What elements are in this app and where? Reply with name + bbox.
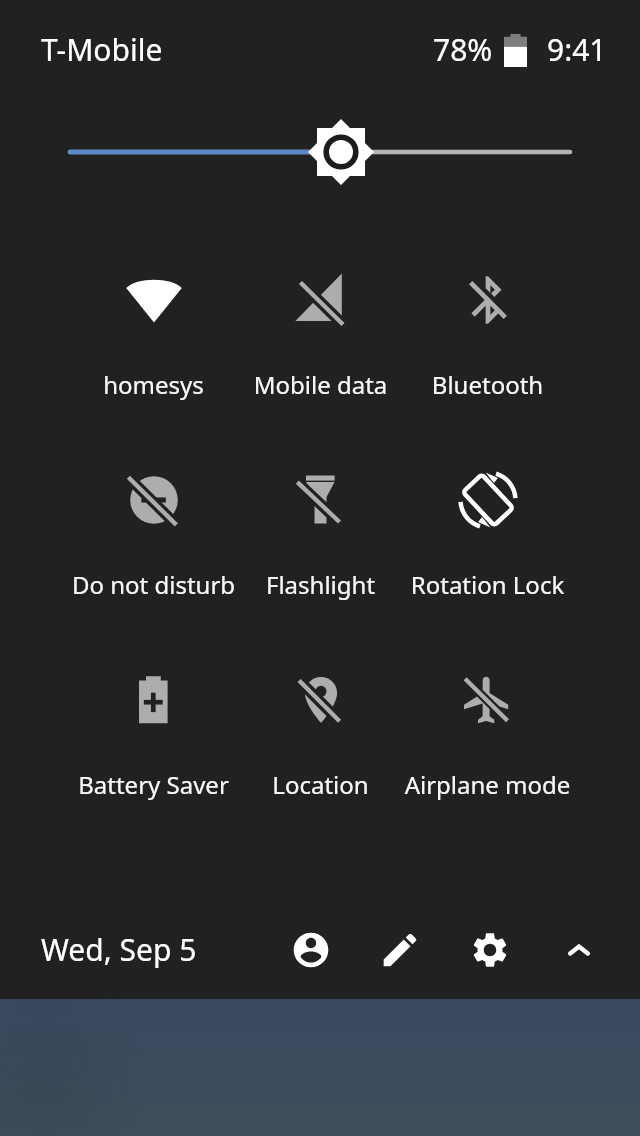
button[interactable]: Flashlight [237, 438, 404, 582]
button[interactable]: Edit [372, 922, 428, 978]
staticText: homesys [70, 368, 237, 401]
button[interactable]: Bluetooth [404, 238, 571, 382]
staticText: Do not disturb [70, 568, 237, 601]
button[interactable]: Mobile data [237, 238, 404, 382]
button[interactable]: homesys [70, 238, 237, 382]
button[interactable]: Rotation Lock [404, 438, 571, 582]
button[interactable]: Battery Saver [70, 638, 237, 782]
staticText: Battery Saver [70, 768, 237, 801]
staticText: Wed, Sep 5 [41, 929, 197, 970]
staticText: Rotation Lock [404, 568, 571, 601]
button[interactable]: Do not disturb [70, 438, 237, 582]
staticText: Location [237, 768, 404, 801]
staticText: Airplane mode [404, 768, 571, 801]
staticText: T-Mobile [41, 29, 163, 70]
button[interactable]: Collapse [551, 922, 607, 978]
button[interactable]: Location [237, 638, 404, 782]
staticText: Mobile data [237, 368, 404, 401]
button[interactable]: Airplane mode [404, 638, 571, 782]
button[interactable]: Settings [462, 922, 518, 978]
button[interactable]: Account [283, 922, 339, 978]
staticText: 78% [433, 29, 493, 70]
button[interactable]: Brightness [40, 112, 600, 192]
staticText: Flashlight [237, 568, 404, 601]
staticText: Bluetooth [404, 368, 571, 401]
staticText: 9:41 [547, 29, 607, 70]
